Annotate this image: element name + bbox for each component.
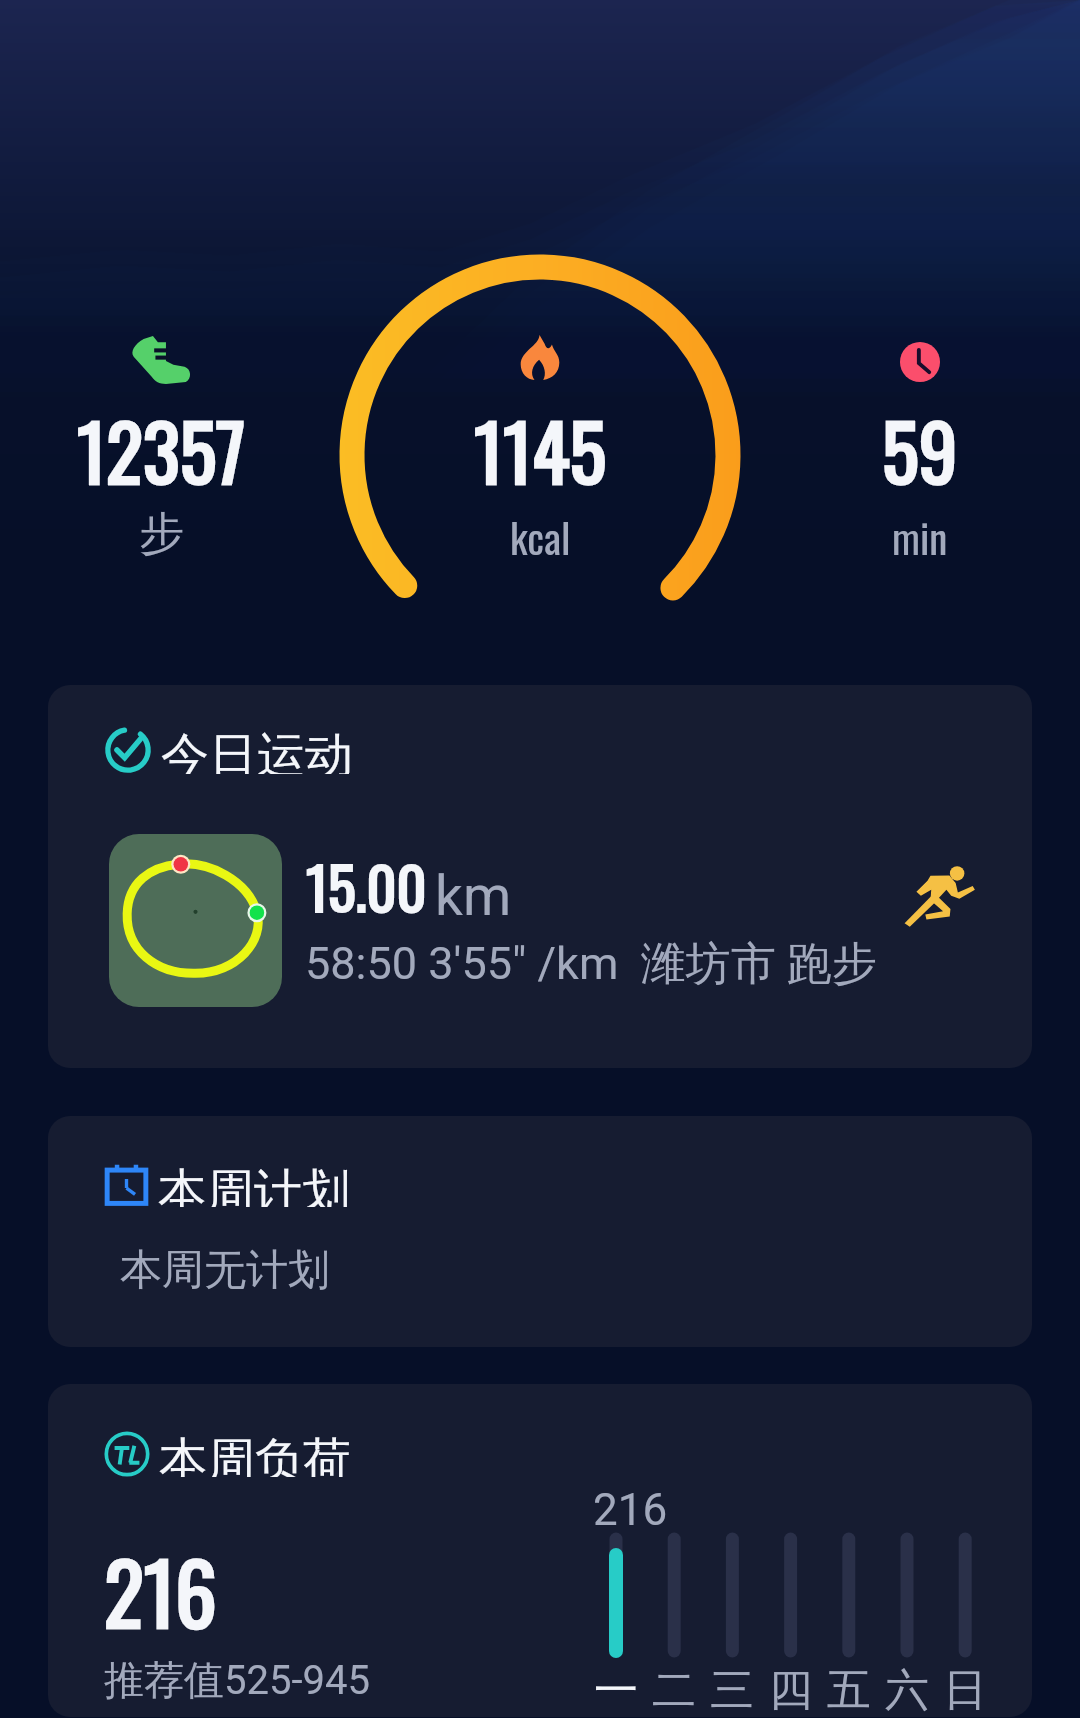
staticText: 59 [882, 392, 958, 506]
staticText: 12357 [77, 392, 246, 506]
staticText: 216 [104, 1529, 217, 1652]
staticText: 步 [139, 506, 184, 563]
staticText: min [892, 506, 948, 567]
staticText: 216 [593, 1484, 668, 1536]
staticText: 本周负荷 [159, 1431, 351, 1477]
staticText: 本周计划 [158, 1162, 350, 1207]
staticText: 1145 [474, 392, 607, 506]
staticText: 五 [827, 1663, 871, 1717]
button[interactable]: 本周负荷 [48, 1384, 1032, 1717]
staticText: kcal [510, 506, 571, 567]
staticText: 本周无计划 [120, 1244, 330, 1297]
staticText: 一 [594, 1663, 638, 1717]
staticText: 二 [652, 1663, 696, 1717]
staticText: 日 [943, 1663, 987, 1717]
button[interactable]: 今日运动 [48, 685, 1032, 1068]
staticText: 15.00 [306, 843, 427, 929]
staticText: km [435, 864, 512, 928]
staticText: 三 [710, 1663, 754, 1717]
staticText: 今日运动 [161, 726, 353, 774]
staticText: 58:50 3'55" /km 潍坊市 跑步 [305, 936, 877, 993]
staticText: 六 [885, 1663, 929, 1717]
other: Running activity [902, 863, 976, 930]
button[interactable]: 本周计划 [48, 1116, 1032, 1347]
staticText: 四 [769, 1663, 813, 1717]
staticText: 推荐值525-945 [104, 1655, 370, 1705]
